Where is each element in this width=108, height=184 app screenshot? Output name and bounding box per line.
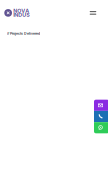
staticText: INDUS bbox=[13, 12, 29, 18]
button[interactable]: Email us bbox=[94, 100, 108, 111]
button[interactable]: Call us bbox=[94, 111, 108, 122]
staticText: // Projects Delivered bbox=[7, 31, 40, 36]
button[interactable]: NOVA bbox=[4, 9, 29, 17]
button[interactable]: Menu bbox=[89, 9, 97, 17]
button[interactable]: Chat on WhatsApp bbox=[94, 122, 108, 133]
staticText: NOVA bbox=[13, 8, 29, 14]
